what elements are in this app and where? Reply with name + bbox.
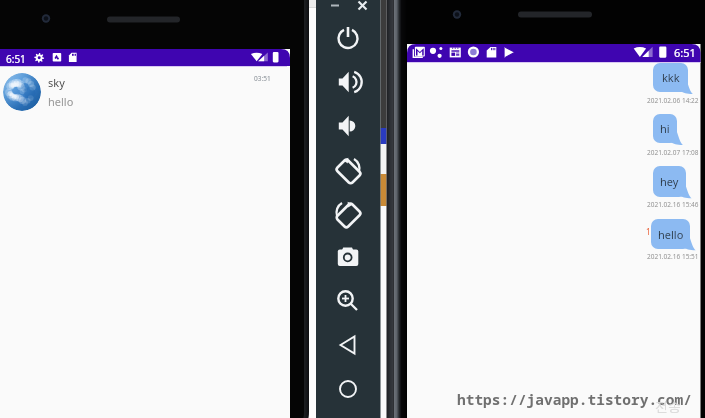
button[interactable]: Rotate left [330, 154, 366, 190]
staticText: 2021.02.06 14:22 [647, 96, 699, 105]
button[interactable]: Back [330, 329, 366, 365]
staticText: 2021.02.16 15:51 [647, 252, 699, 261]
button[interactable]: Volume up [330, 66, 366, 102]
staticText: 6:51 [674, 45, 696, 60]
staticText: https://javapp.tistory.com/ [457, 389, 692, 409]
staticText: hello [658, 227, 684, 242]
button[interactable]: hi [653, 114, 677, 143]
button[interactable]: hey [653, 166, 686, 197]
button[interactable]: Minimize [327, 0, 345, 12]
staticText: sky [48, 75, 65, 90]
staticText: hi [660, 121, 670, 136]
button[interactable]: Power [330, 22, 366, 58]
button[interactable]: hello [651, 219, 690, 249]
staticText: 2021.02.07 17:08 [647, 148, 699, 157]
staticText: hello [48, 94, 74, 109]
staticText: 전송 [655, 398, 681, 414]
staticText: kkk [662, 70, 680, 85]
staticText: 03:51 [254, 74, 271, 83]
button[interactable]: Home [330, 373, 366, 409]
button[interactable]: sky [0, 67, 290, 116]
staticText: 2021.02.16 15:46 [647, 200, 699, 209]
button[interactable]: Rotate right [330, 198, 366, 234]
button[interactable]: Take screenshot [330, 241, 366, 277]
button[interactable]: Volume down [330, 110, 366, 146]
staticText: 1 [646, 226, 651, 237]
button[interactable]: Zoom [330, 285, 366, 321]
staticText: 6:51 [6, 52, 26, 66]
button[interactable]: kkk [653, 63, 688, 92]
staticText: hey [660, 174, 679, 189]
button[interactable]: Close [354, 0, 372, 12]
